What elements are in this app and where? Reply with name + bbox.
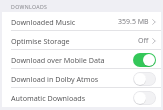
staticText: DOWNLOADS <box>11 3 48 10</box>
button[interactable]: Off <box>133 91 156 105</box>
button[interactable]: Download in Dolby Atmos <box>2 69 161 88</box>
button[interactable]: Off <box>133 72 156 86</box>
staticText: Optimise Storage <box>11 36 138 46</box>
staticText: Download in Dolby Atmos <box>11 74 133 84</box>
staticText: Downloaded Music <box>11 17 118 27</box>
button[interactable]: Downloaded Music <box>2 12 161 31</box>
button[interactable]: On <box>133 53 156 67</box>
staticText: 359.5 MB <box>118 17 149 27</box>
button[interactable]: Automatic Downloads <box>2 88 161 107</box>
button[interactable]: Optimise Storage <box>2 31 161 50</box>
staticText: Automatic Downloads <box>11 93 133 103</box>
other: Open <box>152 37 156 45</box>
button[interactable]: Download over Mobile Data <box>2 50 161 69</box>
staticText: Off <box>138 36 149 46</box>
staticText: Download over Mobile Data <box>11 55 133 65</box>
other: Open <box>152 18 156 26</box>
